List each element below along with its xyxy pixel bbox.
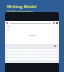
staticText: Writing Model	[7, 4, 37, 9]
staticText: Quickly capture ideas	[7, 10, 34, 14]
